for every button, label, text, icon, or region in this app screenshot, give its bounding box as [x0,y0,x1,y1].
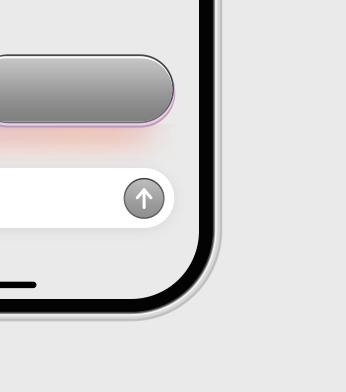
button[interactable]: Send [124,178,165,219]
